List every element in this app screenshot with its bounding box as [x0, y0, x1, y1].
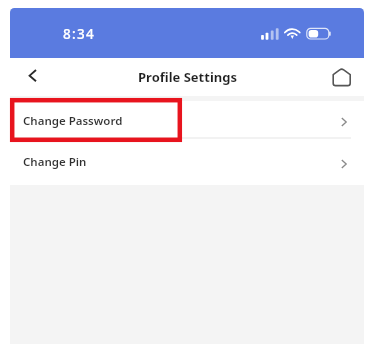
staticText: 8:34 — [63, 25, 96, 43]
button[interactable]: Change Password — [10, 101, 364, 137]
button[interactable]: Home — [317, 58, 353, 96]
button[interactable]: Back — [15, 61, 48, 94]
staticText: Profile Settings — [138, 68, 237, 86]
button[interactable]: Change Pin — [10, 139, 364, 185]
staticText: Change Pin — [23, 154, 87, 170]
staticText: Change Password — [23, 113, 123, 129]
